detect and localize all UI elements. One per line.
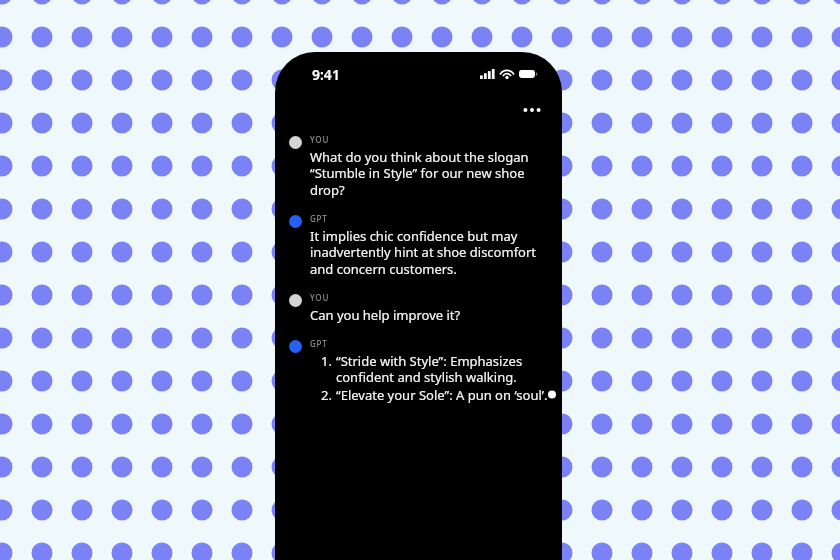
staticText: 2. (319, 386, 332, 404)
staticText: 1. (319, 352, 332, 370)
staticText: YOU (310, 292, 330, 303)
staticText: “Stride with Style”: Emphasizes confiden… (336, 352, 523, 386)
staticText: It implies chic confidence but may inadv… (310, 227, 537, 278)
staticText: YOU (310, 134, 330, 145)
staticText: What do you think about the slogan “Stum… (310, 148, 529, 199)
button[interactable]: YOU (275, 292, 562, 324)
button[interactable]: More options (514, 92, 550, 128)
button[interactable]: GPT (275, 338, 562, 404)
button[interactable]: YOU (275, 134, 562, 199)
staticText: GPT (310, 338, 328, 349)
staticText: GPT (310, 213, 328, 224)
staticText: “Elevate your Sole”: A pun on ‘soul’. (336, 386, 548, 404)
staticText: Can you help improve it? (310, 306, 461, 324)
staticText: 9:41 (312, 65, 340, 84)
button[interactable]: GPT (275, 213, 562, 278)
